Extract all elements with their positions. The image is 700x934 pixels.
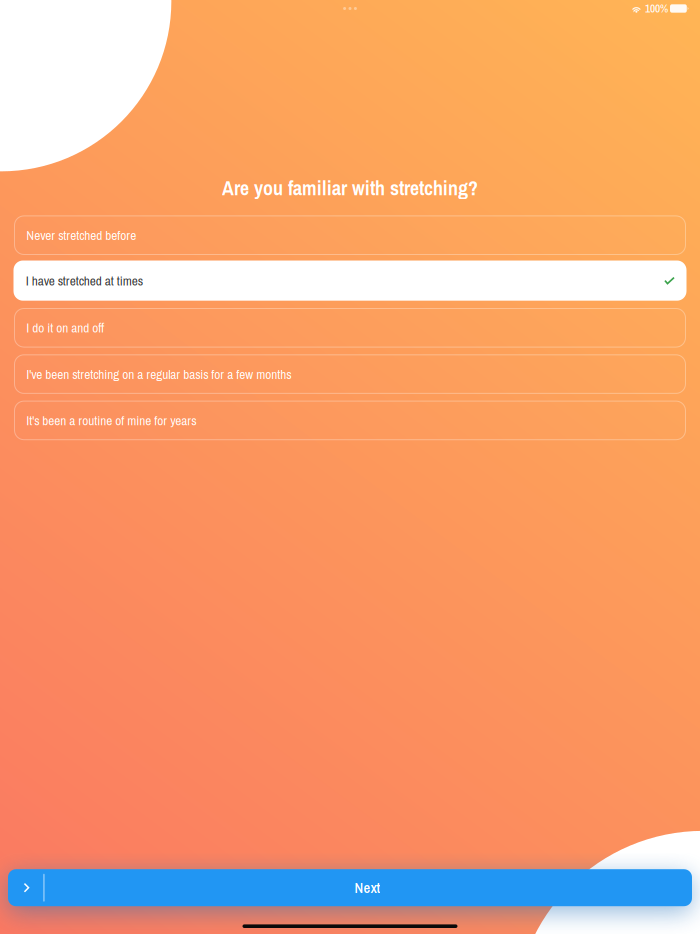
staticText: Next	[354, 878, 380, 898]
button[interactable]: I do it on and off	[14, 308, 686, 348]
button[interactable]: I've been stretching on a regular basis …	[14, 354, 686, 394]
staticText: I have stretched at times	[26, 272, 143, 290]
button[interactable]: Next	[45, 869, 690, 906]
button[interactable]: It's been a routine of mine for years	[14, 401, 686, 440]
button[interactable]: Never stretched before	[14, 215, 686, 255]
staticText: 100%	[645, 1, 668, 16]
button[interactable]: Back	[10, 869, 43, 906]
staticText: Are you familiar with stretching?	[222, 174, 478, 201]
staticText: I do it on and off	[26, 319, 104, 337]
button[interactable]: I have stretched at times	[13, 260, 686, 301]
staticText: It's been a routine of mine for years	[26, 411, 196, 429]
staticText: Never stretched before	[26, 226, 136, 244]
staticText: I've been stretching on a regular basis …	[26, 365, 291, 383]
